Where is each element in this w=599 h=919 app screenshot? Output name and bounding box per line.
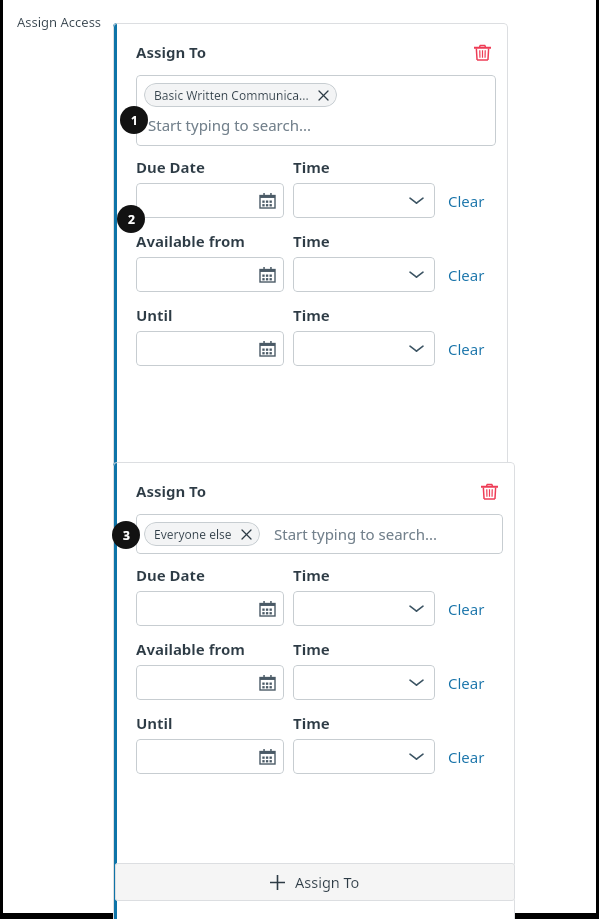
staticText: Time <box>293 565 330 585</box>
staticText: Until <box>136 305 173 325</box>
staticText: Time <box>293 157 330 177</box>
staticText: Available from <box>136 639 245 659</box>
staticText: Start typing to search... <box>148 115 312 135</box>
button[interactable]: Clear <box>446 186 487 216</box>
staticText: Basic Written Communica... <box>154 87 309 103</box>
staticText: Until <box>136 713 173 733</box>
staticText: Clear <box>448 747 485 767</box>
staticText: Clear <box>448 265 485 285</box>
staticText: Due Date <box>136 157 206 177</box>
button[interactable]: Assign to search field <box>136 75 496 146</box>
button[interactable]: Until time <box>293 331 435 366</box>
button[interactable]: Delete assignment <box>468 38 496 66</box>
staticText: Clear <box>448 191 485 211</box>
staticText: Everyone else <box>154 526 232 542</box>
staticText: Time <box>293 639 330 659</box>
button[interactable]: Due Date date <box>136 591 284 626</box>
button[interactable]: Until date <box>136 331 284 366</box>
button[interactable]: Everyone else <box>144 522 260 546</box>
staticText: 1 <box>131 112 138 128</box>
button[interactable]: Available from date <box>136 665 284 700</box>
button[interactable]: Until date <box>136 739 284 774</box>
button[interactable]: Available from time <box>293 665 435 700</box>
button[interactable]: Clear <box>446 334 487 364</box>
button[interactable]: Until time <box>293 739 435 774</box>
staticText: Time <box>293 231 330 251</box>
other: Remove Everyone else <box>240 528 252 540</box>
button[interactable]: Clear <box>446 260 487 290</box>
staticText: Time <box>293 305 330 325</box>
button[interactable]: Delete assignment <box>475 477 503 505</box>
staticText: Start typing to search... <box>274 524 438 544</box>
staticText: 3 <box>123 527 130 543</box>
other: Remove Basic Written Communica... <box>317 89 329 101</box>
button[interactable]: Assign to search field <box>136 514 503 554</box>
button[interactable]: Clear <box>446 742 487 772</box>
staticText: 2 <box>128 211 135 227</box>
button[interactable]: Available from time <box>293 257 435 292</box>
staticText: Due Date <box>136 565 206 585</box>
button[interactable]: Basic Written Communica... <box>144 83 337 107</box>
button[interactable]: Clear <box>446 594 487 624</box>
staticText: Clear <box>448 673 485 693</box>
staticText: Clear <box>448 599 485 619</box>
staticText: Available from <box>136 231 245 251</box>
staticText: Assign Access <box>17 13 102 31</box>
staticText: Assign To <box>295 872 360 892</box>
button[interactable]: Due Date date <box>136 183 284 218</box>
staticText: Assign To <box>136 481 207 501</box>
staticText: Clear <box>448 339 485 359</box>
button[interactable]: Available from date <box>136 257 284 292</box>
button[interactable]: Due Date time <box>293 591 435 626</box>
button[interactable]: Clear <box>446 668 487 698</box>
staticText: Assign To <box>136 42 207 62</box>
button[interactable]: Assign To <box>115 863 515 901</box>
button[interactable]: Due Date time <box>293 183 435 218</box>
staticText: Time <box>293 713 330 733</box>
